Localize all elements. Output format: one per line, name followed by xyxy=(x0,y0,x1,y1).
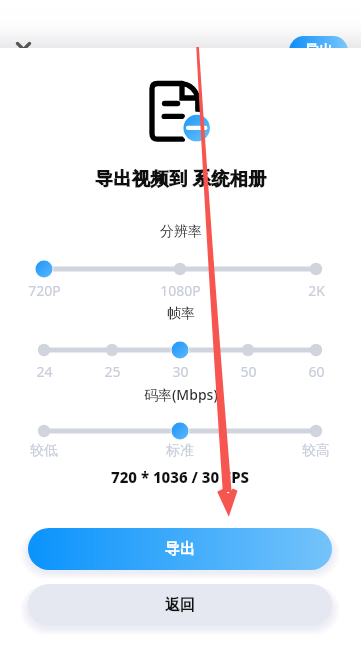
staticText: 标准 xyxy=(166,442,194,460)
staticText: 导出 xyxy=(305,42,333,48)
button[interactable]: 返回 xyxy=(28,584,332,626)
staticText: 2K xyxy=(308,281,325,300)
button[interactable]: 导出 xyxy=(289,36,348,48)
staticText: 25 xyxy=(104,362,121,381)
staticText: 导出 xyxy=(165,540,195,559)
staticText: 返回 xyxy=(165,596,195,615)
staticText: 帧率 xyxy=(167,305,195,323)
staticText: 导出视频到 系统相册 xyxy=(95,166,267,191)
staticText: 较高 xyxy=(302,442,330,460)
staticText: 60 xyxy=(308,362,325,381)
staticText: 30 xyxy=(172,362,189,381)
staticText: 24 xyxy=(36,362,53,381)
staticText: 50 xyxy=(240,362,257,381)
button[interactable]: 导出 xyxy=(28,528,332,570)
staticText: 720P xyxy=(28,281,61,300)
staticText: 码率(Mbps) xyxy=(144,385,218,404)
staticText: 分辨率 xyxy=(160,223,202,241)
staticText: 较低 xyxy=(30,442,58,460)
staticText: 1080P xyxy=(160,281,201,300)
staticText: 720 * 1036 / 30 FPS xyxy=(111,467,250,487)
button[interactable]: Collapse xyxy=(6,22,40,48)
